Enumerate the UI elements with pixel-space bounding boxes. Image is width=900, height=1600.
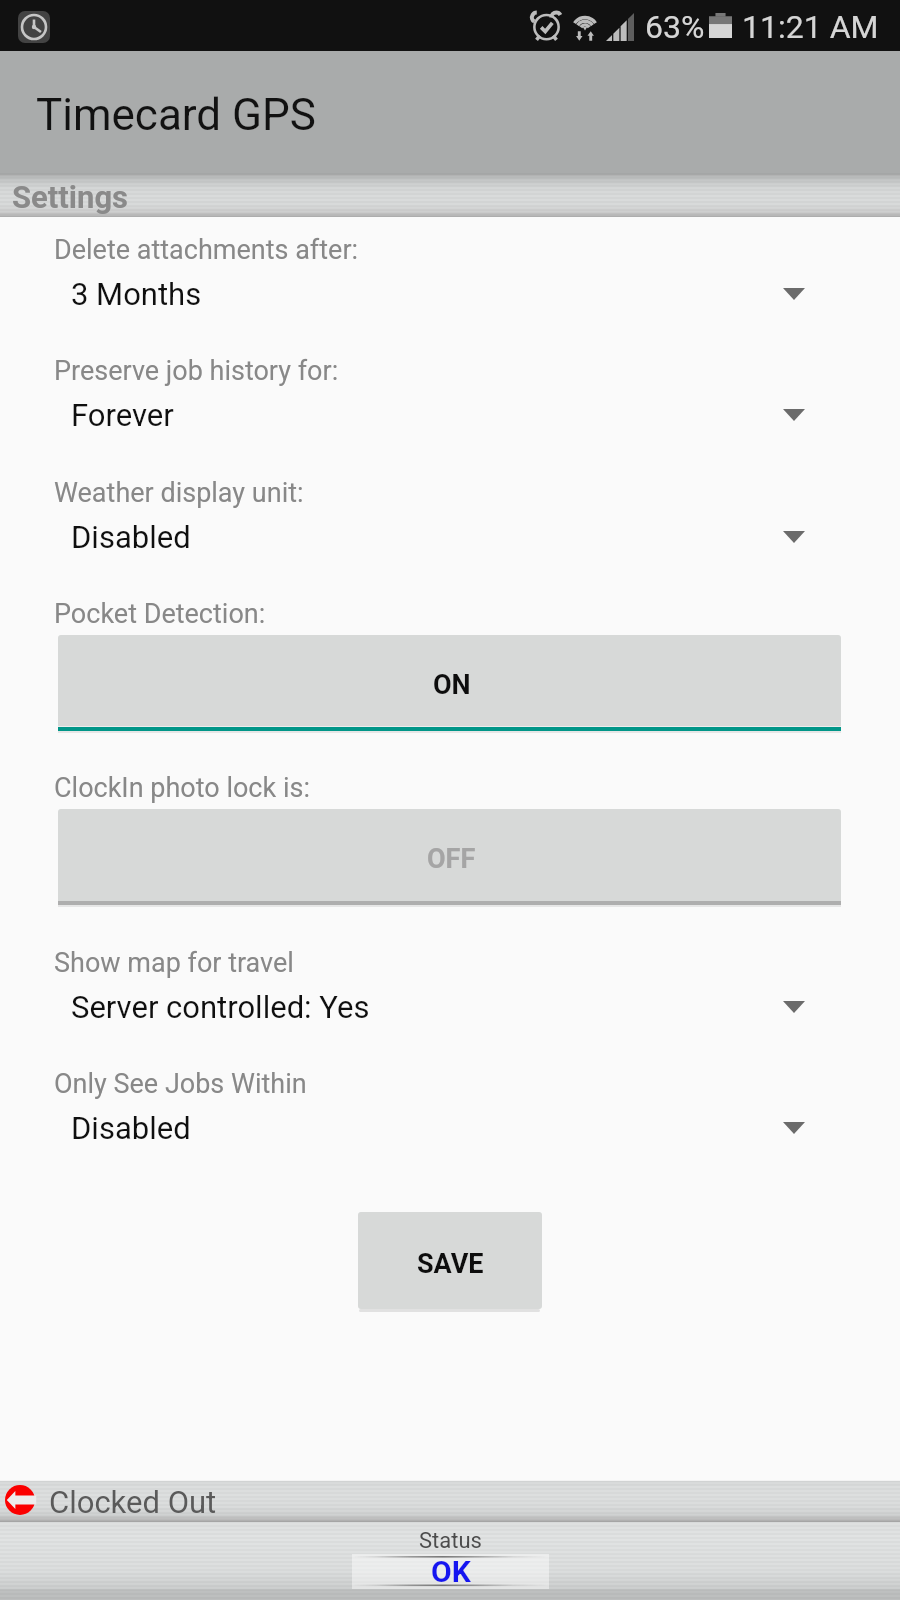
staticText: Show map for travel bbox=[54, 947, 294, 979]
staticText: Server controlled: Yes bbox=[71, 989, 370, 1025]
staticText: OFF bbox=[427, 843, 476, 875]
button[interactable]: Delete attachments after: bbox=[0, 226, 900, 326]
staticText: Weather display unit: bbox=[54, 477, 304, 509]
button[interactable]: Preserve job history for: bbox=[0, 347, 900, 447]
staticText: OK bbox=[431, 1554, 471, 1589]
button[interactable]: Weather display unit: bbox=[0, 469, 900, 569]
other: Clock in bbox=[5, 1485, 35, 1515]
staticText: ON bbox=[433, 669, 471, 701]
button[interactable]: Show map for travel bbox=[0, 939, 900, 1039]
staticText: Pocket Detection: bbox=[54, 598, 266, 630]
button[interactable]: Clock in bbox=[0, 1481, 900, 1522]
staticText: ClockIn photo lock is: bbox=[54, 772, 310, 804]
staticText: 63% bbox=[645, 8, 705, 46]
staticText: Delete attachments after: bbox=[54, 234, 359, 266]
button[interactable]: Only See Jobs Within bbox=[0, 1060, 900, 1160]
staticText: Status bbox=[419, 1528, 482, 1554]
staticText: Disabled bbox=[71, 519, 191, 555]
button[interactable]: OK bbox=[352, 1554, 549, 1589]
staticText: Timecard GPS bbox=[36, 89, 316, 141]
staticText: SAVE bbox=[417, 1248, 484, 1280]
staticText: 3 Months bbox=[71, 276, 202, 312]
button[interactable]: OFF bbox=[58, 809, 841, 907]
staticText: Forever bbox=[71, 397, 174, 433]
other: Clock bbox=[18, 11, 50, 43]
staticText: 11:21 AM bbox=[742, 8, 879, 46]
staticText: Settings bbox=[12, 179, 129, 215]
staticText: Preserve job history for: bbox=[54, 355, 339, 387]
button[interactable]: ON bbox=[58, 635, 841, 733]
staticText: Clocked Out bbox=[49, 1484, 217, 1520]
button[interactable]: SAVE bbox=[358, 1212, 542, 1309]
staticText: Only See Jobs Within bbox=[54, 1068, 307, 1100]
staticText: Disabled bbox=[71, 1110, 191, 1146]
